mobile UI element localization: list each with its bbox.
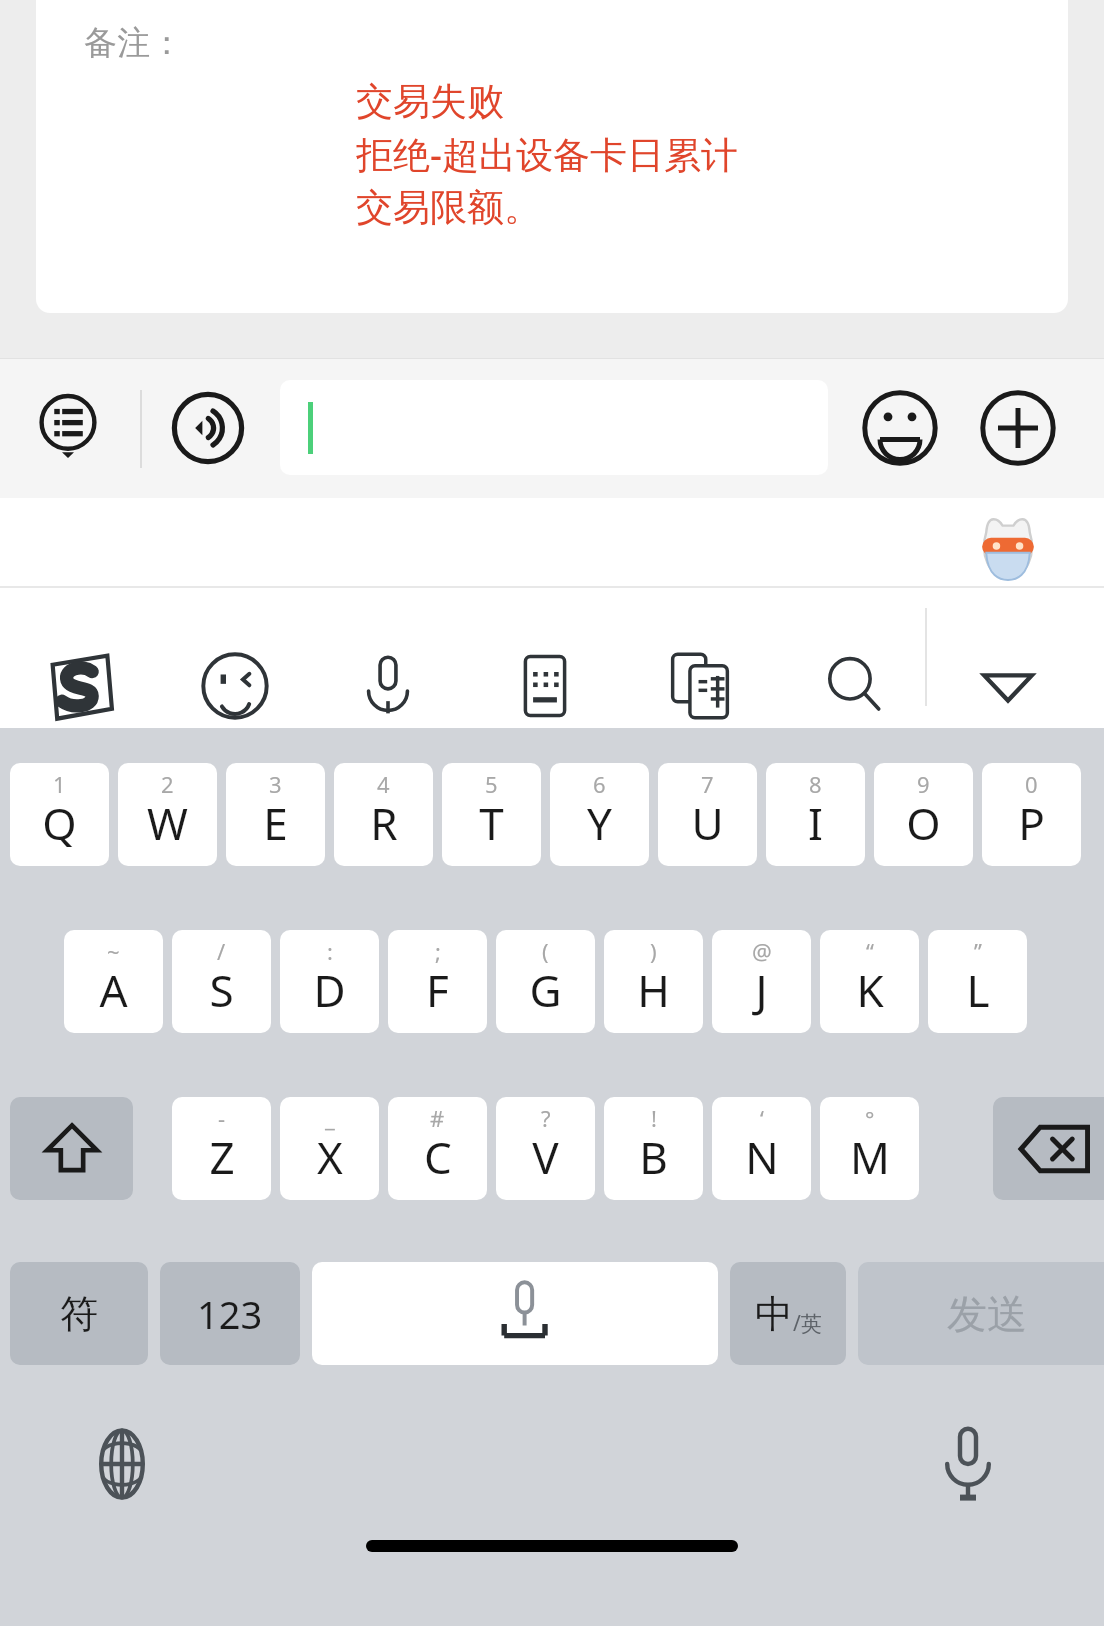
staticText: /英 <box>793 1309 822 1338</box>
button[interactable]: _ <box>280 1097 379 1200</box>
staticText: ” <box>974 936 982 966</box>
staticText: 符 <box>60 1290 98 1338</box>
staticText: 2 <box>161 769 174 799</box>
staticText: ! <box>651 1103 657 1133</box>
staticText: _ <box>325 1103 335 1133</box>
staticText: O <box>906 793 941 853</box>
staticText: T <box>479 793 504 853</box>
staticText: Z <box>209 1127 235 1187</box>
staticText: F <box>426 960 449 1020</box>
button[interactable]: Switch language <box>76 1418 168 1510</box>
button[interactable]: “ <box>820 930 919 1033</box>
staticText: / <box>217 936 226 966</box>
button[interactable]: # <box>388 1097 487 1200</box>
staticText: M <box>850 1127 890 1187</box>
staticText: ( <box>542 936 549 966</box>
staticText: K <box>856 960 884 1020</box>
staticText: G <box>529 960 562 1020</box>
staticText: ~ <box>107 936 120 966</box>
staticText: J <box>755 960 768 1020</box>
staticText: P <box>1018 793 1045 853</box>
staticText: 123 <box>197 1288 263 1340</box>
button[interactable]: Translate <box>648 644 752 728</box>
button[interactable]: ) <box>604 930 703 1033</box>
button[interactable]: ! <box>604 1097 703 1200</box>
button[interactable]: Emoticons <box>183 644 287 728</box>
button[interactable]: 0 <box>982 763 1081 866</box>
staticText: 4 <box>377 769 390 799</box>
staticText: R <box>370 793 398 853</box>
button[interactable]: 1 <box>10 763 109 866</box>
staticText: N <box>745 1127 779 1187</box>
staticText: 8 <box>809 769 822 799</box>
button[interactable]: - <box>172 1097 271 1200</box>
button[interactable]: Voice <box>336 644 440 728</box>
staticText: U <box>691 793 724 853</box>
staticText: A <box>99 960 128 1020</box>
button[interactable] <box>280 380 828 475</box>
staticText: 3 <box>269 769 282 799</box>
button[interactable]: ; <box>388 930 487 1033</box>
staticText: 9 <box>917 769 930 799</box>
button[interactable]: ~ <box>64 930 163 1033</box>
button[interactable]: 中 <box>730 1262 846 1365</box>
button[interactable]: Sogou keyboard <box>28 644 132 728</box>
button[interactable]: 发送 <box>858 1262 1104 1365</box>
staticText: ‘ <box>760 1103 764 1133</box>
staticText: - <box>218 1103 226 1133</box>
button[interactable]: More options <box>22 388 118 468</box>
staticText: W <box>147 793 188 853</box>
button[interactable]: ” <box>928 930 1027 1033</box>
button[interactable]: Voice input <box>160 388 256 468</box>
button[interactable]: 3 <box>226 763 325 866</box>
staticText: ) <box>650 936 657 966</box>
button[interactable]: 5 <box>442 763 541 866</box>
staticText: 5 <box>485 769 498 799</box>
staticText: V <box>532 1127 559 1187</box>
button[interactable]: 2 <box>118 763 217 866</box>
staticText: 7 <box>701 769 714 799</box>
staticText: 发送 <box>947 1289 1027 1339</box>
staticText: ; <box>435 936 441 966</box>
staticText: : <box>327 936 333 966</box>
staticText: 0 <box>1025 769 1038 799</box>
button[interactable]: Shift <box>10 1097 133 1200</box>
staticText: # <box>430 1103 445 1133</box>
button[interactable]: ? <box>496 1097 595 1200</box>
button[interactable]: 9 <box>874 763 973 866</box>
button[interactable]: Mascot <box>972 510 1044 582</box>
button[interactable]: Search <box>803 644 907 728</box>
staticText: 6 <box>593 769 606 799</box>
button[interactable]: Space <box>312 1262 718 1365</box>
staticText: @ <box>752 936 772 966</box>
button[interactable]: 符 <box>10 1262 148 1365</box>
button[interactable]: Dictation <box>922 1418 1014 1510</box>
button[interactable]: Numeric keypad <box>493 644 597 728</box>
button[interactable]: ( <box>496 930 595 1033</box>
staticText: 备注： <box>84 22 183 64</box>
button[interactable]: / <box>172 930 271 1033</box>
staticText: ? <box>541 1103 551 1133</box>
button[interactable]: ° <box>820 1097 919 1200</box>
button[interactable]: 8 <box>766 763 865 866</box>
button[interactable]: 7 <box>658 763 757 866</box>
button[interactable]: : <box>280 930 379 1033</box>
staticText: Y <box>587 793 612 853</box>
button[interactable]: Add <box>972 386 1064 470</box>
button[interactable]: @ <box>712 930 811 1033</box>
button[interactable]: 6 <box>550 763 649 866</box>
staticText: C <box>424 1127 452 1187</box>
staticText: 1 <box>53 769 66 799</box>
staticText: 中 <box>755 1290 793 1338</box>
button[interactable]: Hide keyboard <box>956 644 1060 728</box>
button[interactable]: ‘ <box>712 1097 811 1200</box>
staticText: X <box>317 1127 343 1187</box>
staticText: D <box>313 960 346 1020</box>
button[interactable]: 123 <box>160 1262 300 1365</box>
staticText: “ <box>866 936 874 966</box>
button[interactable]: Backspace <box>993 1097 1104 1200</box>
button[interactable]: Emoji <box>854 386 946 470</box>
button[interactable]: 4 <box>334 763 433 866</box>
staticText: L <box>966 960 990 1020</box>
staticText: ° <box>865 1103 875 1133</box>
